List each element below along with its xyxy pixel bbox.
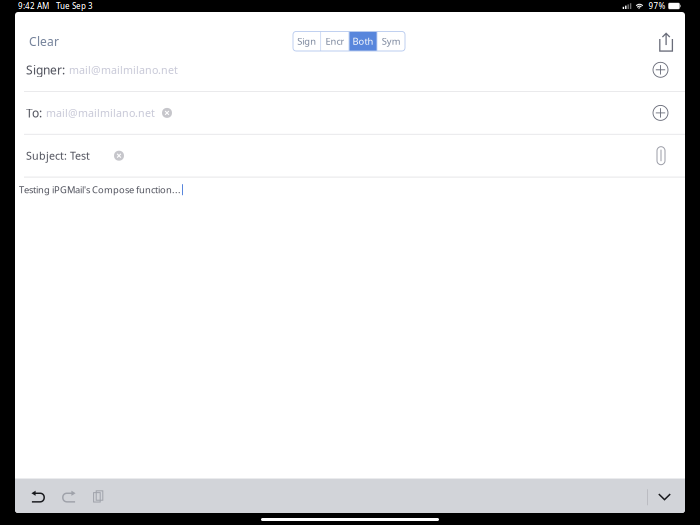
button[interactable]: Redo <box>45 478 76 513</box>
staticText: Encr <box>325 35 344 47</box>
staticText: Signer: <box>26 62 65 78</box>
staticText: Subject: Test <box>26 149 90 163</box>
button[interactable]: Undo <box>15 478 45 513</box>
button[interactable]: Paste <box>76 478 104 513</box>
button[interactable]: Encr <box>321 31 349 51</box>
staticText: Testing iPGMail's Compose function... <box>19 183 181 196</box>
staticText: Sign <box>297 35 316 47</box>
staticText: Both <box>353 35 374 47</box>
button[interactable]: Add recipient <box>653 105 685 120</box>
button[interactable]: Add recipient <box>653 62 685 77</box>
staticText: Clear <box>29 33 59 49</box>
button[interactable]: Clear recipient <box>155 108 172 118</box>
staticText: Sym <box>382 35 401 47</box>
button[interactable]: Sym <box>378 31 405 51</box>
staticText: mail@mailmilano.net <box>69 63 178 77</box>
button[interactable]: Both <box>349 31 377 51</box>
button[interactable]: Clear subject <box>90 151 124 161</box>
staticText: mail@mailmilano.net <box>46 106 155 120</box>
button[interactable]: Attach file <box>657 147 685 165</box>
staticText: To: <box>26 105 42 121</box>
button[interactable]: Sign <box>293 31 320 51</box>
button[interactable]: Hide keyboard <box>648 478 685 514</box>
staticText: Tue Sep 3 <box>56 1 93 11</box>
button[interactable]: Clear <box>15 11 59 53</box>
button[interactable]: Share <box>659 13 685 51</box>
staticText: 97% <box>648 1 665 11</box>
staticText: 9:42 AM <box>18 1 49 11</box>
